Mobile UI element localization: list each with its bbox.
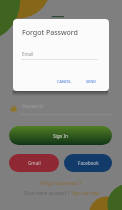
- staticText: Email: [22, 51, 34, 57]
- button[interactable]: Facebook: [64, 154, 112, 172]
- button[interactable]: Sign up now: [71, 190, 99, 197]
- staticText: Sign In: [53, 133, 68, 139]
- button[interactable]: Forgot password ?: [0, 179, 122, 187]
- staticText: Dont have account ?: [24, 190, 71, 197]
- staticText: Password: [22, 103, 43, 109]
- staticText: CANCEL: [57, 79, 72, 84]
- staticText: Gmail: [28, 160, 41, 166]
- staticText: Facebook: [78, 160, 99, 166]
- button[interactable]: SEND: [83, 77, 99, 85]
- button[interactable]: CANCEL: [55, 77, 73, 85]
- button[interactable]: Sign In: [9, 126, 112, 145]
- staticText: Forgot password ?: [40, 180, 82, 187]
- staticText: Forgot Password: [22, 27, 78, 37]
- staticText: Sign up now: [71, 190, 99, 197]
- button[interactable]: Gmail: [9, 154, 59, 172]
- staticText: SEND: [86, 79, 96, 84]
